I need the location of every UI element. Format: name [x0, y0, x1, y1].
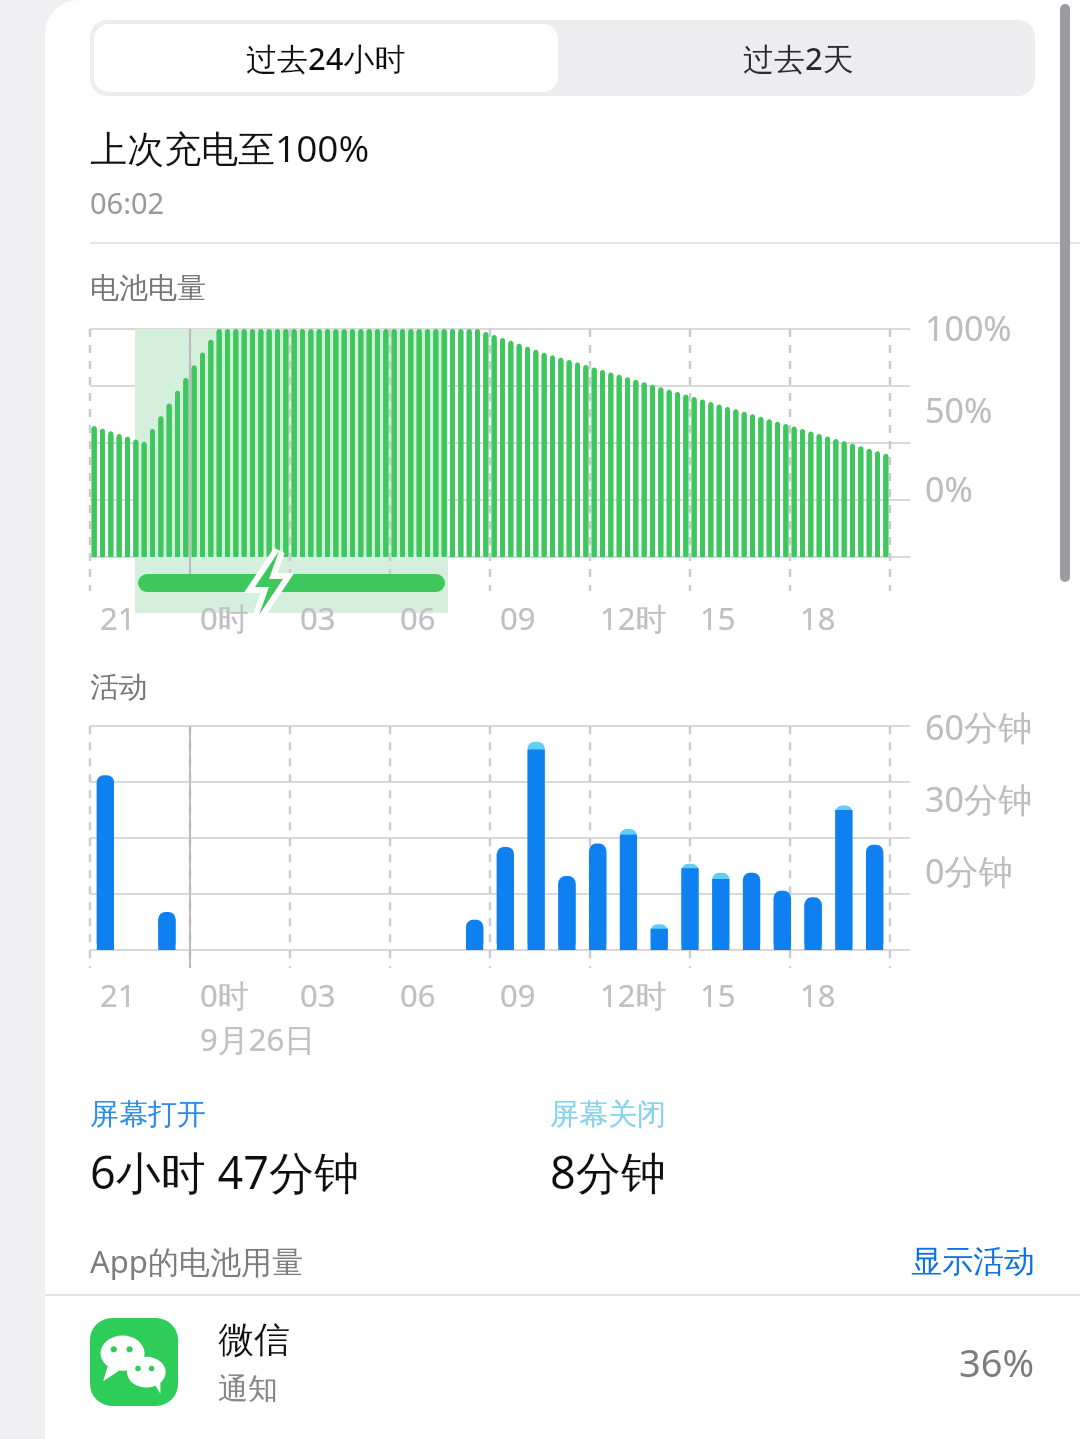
- staticText: 30分钟: [925, 776, 1032, 822]
- staticText: 0时: [200, 597, 249, 639]
- staticText: 屏幕打开: [90, 1096, 206, 1133]
- staticText: 06: [400, 597, 436, 639]
- staticText: 6小时 47分钟: [90, 1141, 359, 1202]
- staticText: 21: [100, 597, 136, 639]
- button[interactable]: 微信: [45, 1296, 1080, 1428]
- staticText: 过去2天: [743, 37, 854, 79]
- staticText: 12时: [600, 974, 667, 1016]
- staticText: 36%: [959, 1336, 1035, 1388]
- staticText: 电池电量: [90, 270, 206, 307]
- staticText: 屏幕关闭: [550, 1096, 666, 1133]
- staticText: 09: [500, 597, 536, 639]
- staticText: 0时: [200, 974, 249, 1016]
- staticText: 50%: [925, 387, 993, 433]
- staticText: 18: [800, 597, 836, 639]
- staticText: 06: [400, 974, 436, 1016]
- button[interactable]: 过去2天: [562, 20, 1035, 96]
- staticText: 显示活动: [911, 1242, 1035, 1281]
- staticText: 上次充电至100%: [90, 122, 370, 173]
- staticText: 0%: [925, 466, 973, 512]
- staticText: 03: [300, 597, 336, 639]
- button[interactable]: 显示活动: [911, 1242, 1035, 1281]
- staticText: 15: [700, 597, 736, 639]
- staticText: 60分钟: [925, 704, 1032, 750]
- staticText: 100%: [925, 305, 1012, 351]
- button[interactable]: 过去24小时: [94, 24, 558, 92]
- staticText: 12时: [600, 597, 667, 639]
- staticText: 09: [500, 974, 536, 1016]
- staticText: 18: [800, 974, 836, 1016]
- staticText: 通知: [218, 1370, 278, 1408]
- staticText: 微信: [218, 1317, 290, 1362]
- staticText: 8分钟: [550, 1141, 666, 1202]
- staticText: 活动: [90, 669, 148, 706]
- staticText: 21: [100, 974, 136, 1016]
- staticText: App的电池用量: [90, 1240, 303, 1282]
- staticText: 15: [700, 974, 736, 1016]
- staticText: 9月26日: [200, 1018, 316, 1060]
- staticText: 0分钟: [925, 848, 1013, 894]
- staticText: 过去24小时: [246, 37, 406, 79]
- staticText: 06:02: [90, 183, 165, 222]
- staticText: 03: [300, 974, 336, 1016]
